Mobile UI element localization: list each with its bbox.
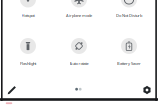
button[interactable]: Do Not Disturb (0, 0, 158, 106)
staticText: Airplane mode (66, 13, 92, 18)
button[interactable]: Battery Saver (0, 0, 158, 106)
button[interactable]: Edit tiles (4, 82, 20, 98)
staticText: Battery Saver (117, 61, 141, 66)
button[interactable]: Hotspot (0, 0, 158, 106)
button[interactable]: Auto rotate (0, 0, 158, 106)
button[interactable]: Settings (139, 82, 155, 98)
staticText: Do Not Disturb (116, 13, 142, 18)
staticText: Flashlight (20, 61, 36, 66)
button[interactable]: Flashlight (0, 0, 158, 106)
staticText: Auto rotate (69, 61, 88, 66)
button[interactable]: Airplane mode (0, 0, 158, 106)
staticText: Hotspot (21, 13, 34, 18)
